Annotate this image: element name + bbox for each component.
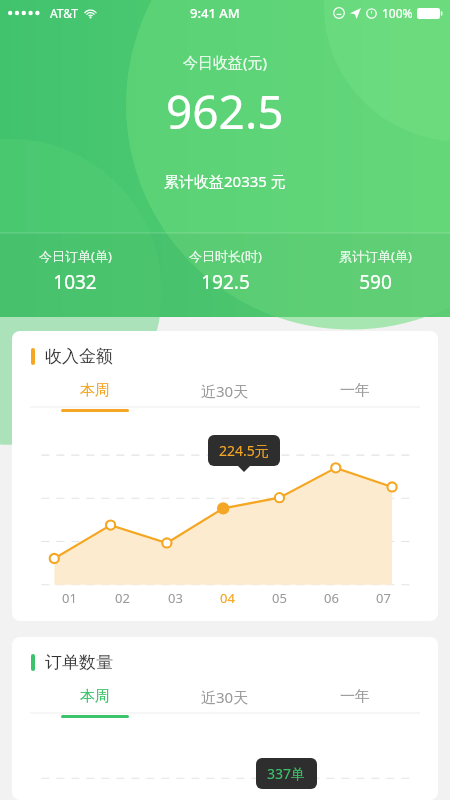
button[interactable]: 今日时长(时): [150, 247, 300, 295]
staticText: 590: [359, 269, 392, 295]
staticText: 962.5: [166, 80, 284, 143]
button[interactable]: 本周: [30, 677, 160, 718]
staticText: 一年: [340, 381, 370, 400]
button[interactable]: 一年: [290, 677, 420, 715]
staticText: AT&T: [50, 5, 78, 21]
staticText: 02: [115, 589, 130, 607]
button[interactable]: 今日订单(单): [0, 247, 150, 295]
staticText: 订单数量: [45, 652, 113, 673]
staticText: 今日时长(时): [189, 247, 262, 265]
button[interactable]: 近30天: [160, 677, 290, 716]
staticText: 05: [272, 589, 287, 607]
staticText: 累计订单(单): [339, 247, 412, 265]
staticText: 一年: [340, 687, 370, 706]
staticText: 本周: [80, 381, 110, 400]
staticText: 04: [220, 589, 235, 607]
staticText: 224.5元: [219, 441, 269, 460]
staticText: 近30天: [201, 381, 249, 401]
staticText: 本周: [80, 687, 110, 706]
staticText: 累计收益20335 元: [164, 171, 286, 191]
button[interactable]: 一年: [290, 371, 420, 409]
staticText: 192.5: [201, 269, 250, 295]
staticText: 今日订单(单): [39, 247, 112, 265]
staticText: 06: [324, 589, 339, 607]
staticText: 今日收益(元): [183, 52, 268, 72]
staticText: 1032: [53, 269, 97, 295]
staticText: 100%: [382, 5, 413, 21]
staticText: 近30天: [201, 687, 249, 707]
staticText: 07: [376, 589, 391, 607]
staticText: 337单: [267, 764, 306, 783]
staticText: 收入金额: [45, 346, 113, 367]
staticText: 9:41 AM: [190, 4, 240, 22]
staticText: 03: [168, 589, 183, 607]
button[interactable]: 近30天: [160, 371, 290, 410]
staticText: 01: [62, 589, 77, 607]
button[interactable]: 累计订单(单): [300, 247, 450, 295]
button[interactable]: 本周: [30, 371, 160, 412]
